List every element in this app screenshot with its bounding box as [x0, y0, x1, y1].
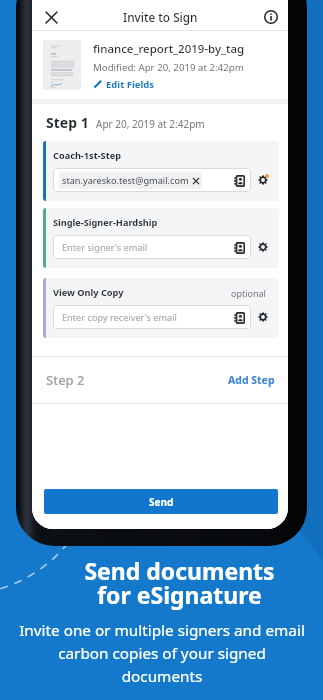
staticText: Invite to Sign	[123, 9, 198, 25]
staticText: Invite one or multiple signers and email…	[19, 620, 305, 687]
staticText: Step 1	[46, 113, 89, 132]
button[interactable]: Enter copy receiver's email	[53, 305, 251, 329]
button[interactable]: Signer settings	[257, 241, 269, 253]
staticText: Coach-1st-Step	[53, 149, 121, 162]
button[interactable]: Signer settings	[257, 311, 269, 323]
staticText: Send	[149, 495, 174, 509]
staticText: stan.yaresko.test@gmail.com	[62, 174, 189, 187]
button[interactable]: Edit Fields	[93, 78, 155, 91]
staticText: optional	[231, 287, 266, 299]
button[interactable]: Send	[44, 489, 278, 514]
button[interactable]: stan.yaresko.test@gmail.com	[53, 168, 251, 192]
button[interactable]: Choose from contacts	[233, 241, 246, 254]
staticText: Single-Signer-Hardship	[53, 216, 158, 229]
button[interactable]: Close	[40, 6, 62, 28]
button[interactable]: Signer settings	[257, 174, 269, 186]
button[interactable]: Info	[260, 6, 282, 28]
staticText: Enter copy receiver's email	[62, 311, 177, 324]
staticText: Send documents for eSignature	[84, 555, 275, 611]
button[interactable]: Choose from contacts	[233, 311, 246, 324]
staticText: Edit Fields	[106, 78, 155, 91]
staticText: Apr 20, 2019 at 2:42pm	[96, 117, 205, 131]
staticText: Modified: Apr 20, 2019 at 2:42pm	[93, 61, 244, 74]
button[interactable]: Enter signer's email	[53, 235, 251, 259]
staticText: Step 2	[46, 371, 85, 389]
button[interactable]: Choose from contacts	[233, 174, 246, 187]
staticText: Add Step	[228, 373, 275, 387]
button[interactable]: Add Step	[228, 373, 275, 387]
staticText: Enter signer's email	[62, 241, 148, 254]
staticText: View Only Copy	[53, 286, 124, 299]
staticText: finance_report_2019-by_tag	[93, 41, 245, 57]
